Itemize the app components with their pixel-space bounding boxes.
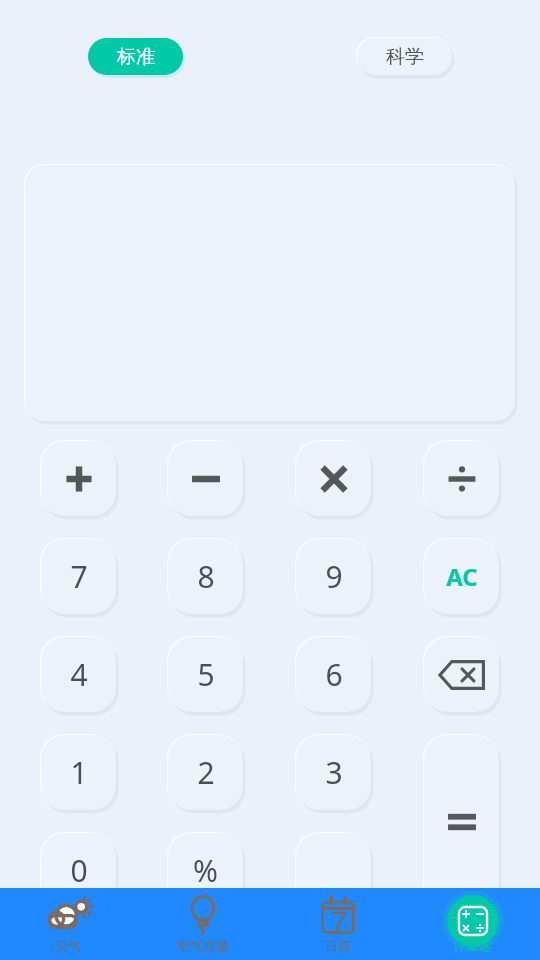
- button[interactable]: Divide: [424, 441, 499, 516]
- button[interactable]: 2: [168, 735, 243, 810]
- button[interactable]: 7: [41, 539, 116, 614]
- button[interactable]: %: [168, 833, 243, 908]
- button[interactable]: 标准: [88, 38, 183, 75]
- button[interactable]: 5: [168, 637, 243, 712]
- button[interactable]: 计算器: [405, 888, 540, 960]
- staticText: 日历: [325, 938, 351, 954]
- button[interactable]: Minus: [168, 441, 243, 516]
- staticText: 7: [70, 556, 88, 597]
- staticText: 2: [197, 752, 215, 793]
- staticText: 8: [197, 556, 215, 597]
- button[interactable]: Plus: [41, 441, 116, 516]
- button[interactable]: 天气: [0, 888, 135, 960]
- button[interactable]: 1: [41, 735, 116, 810]
- button[interactable]: 3: [296, 735, 371, 810]
- staticText: 1: [70, 752, 88, 793]
- staticText: AC: [446, 560, 478, 593]
- staticText: 0: [70, 850, 88, 891]
- staticText: 标准: [117, 45, 155, 69]
- button[interactable]: 空气质量: [135, 888, 270, 960]
- staticText: 4: [70, 654, 88, 695]
- staticText: 6: [325, 654, 343, 695]
- staticText: 空气质量: [177, 938, 229, 954]
- button[interactable]: AC: [424, 539, 499, 614]
- button[interactable]: 8: [168, 539, 243, 614]
- staticText: 科学: [386, 45, 424, 69]
- staticText: 5: [197, 654, 215, 695]
- button[interactable]: Backspace: [424, 637, 499, 712]
- button[interactable]: Equals: [424, 735, 499, 908]
- button[interactable]: Multiply: [296, 441, 371, 516]
- button[interactable]: 9: [296, 539, 371, 614]
- staticText: 天气: [55, 938, 81, 954]
- staticText: 计算器: [453, 938, 492, 954]
- button[interactable]: 日历: [270, 888, 405, 960]
- staticText: 9: [325, 556, 343, 597]
- button[interactable]: Decimal point: [296, 833, 371, 908]
- staticText: %: [193, 850, 218, 891]
- button[interactable]: 科学: [357, 38, 452, 75]
- button[interactable]: 6: [296, 637, 371, 712]
- button[interactable]: 4: [41, 637, 116, 712]
- staticText: 3: [325, 752, 343, 793]
- button[interactable]: 0: [41, 833, 116, 908]
